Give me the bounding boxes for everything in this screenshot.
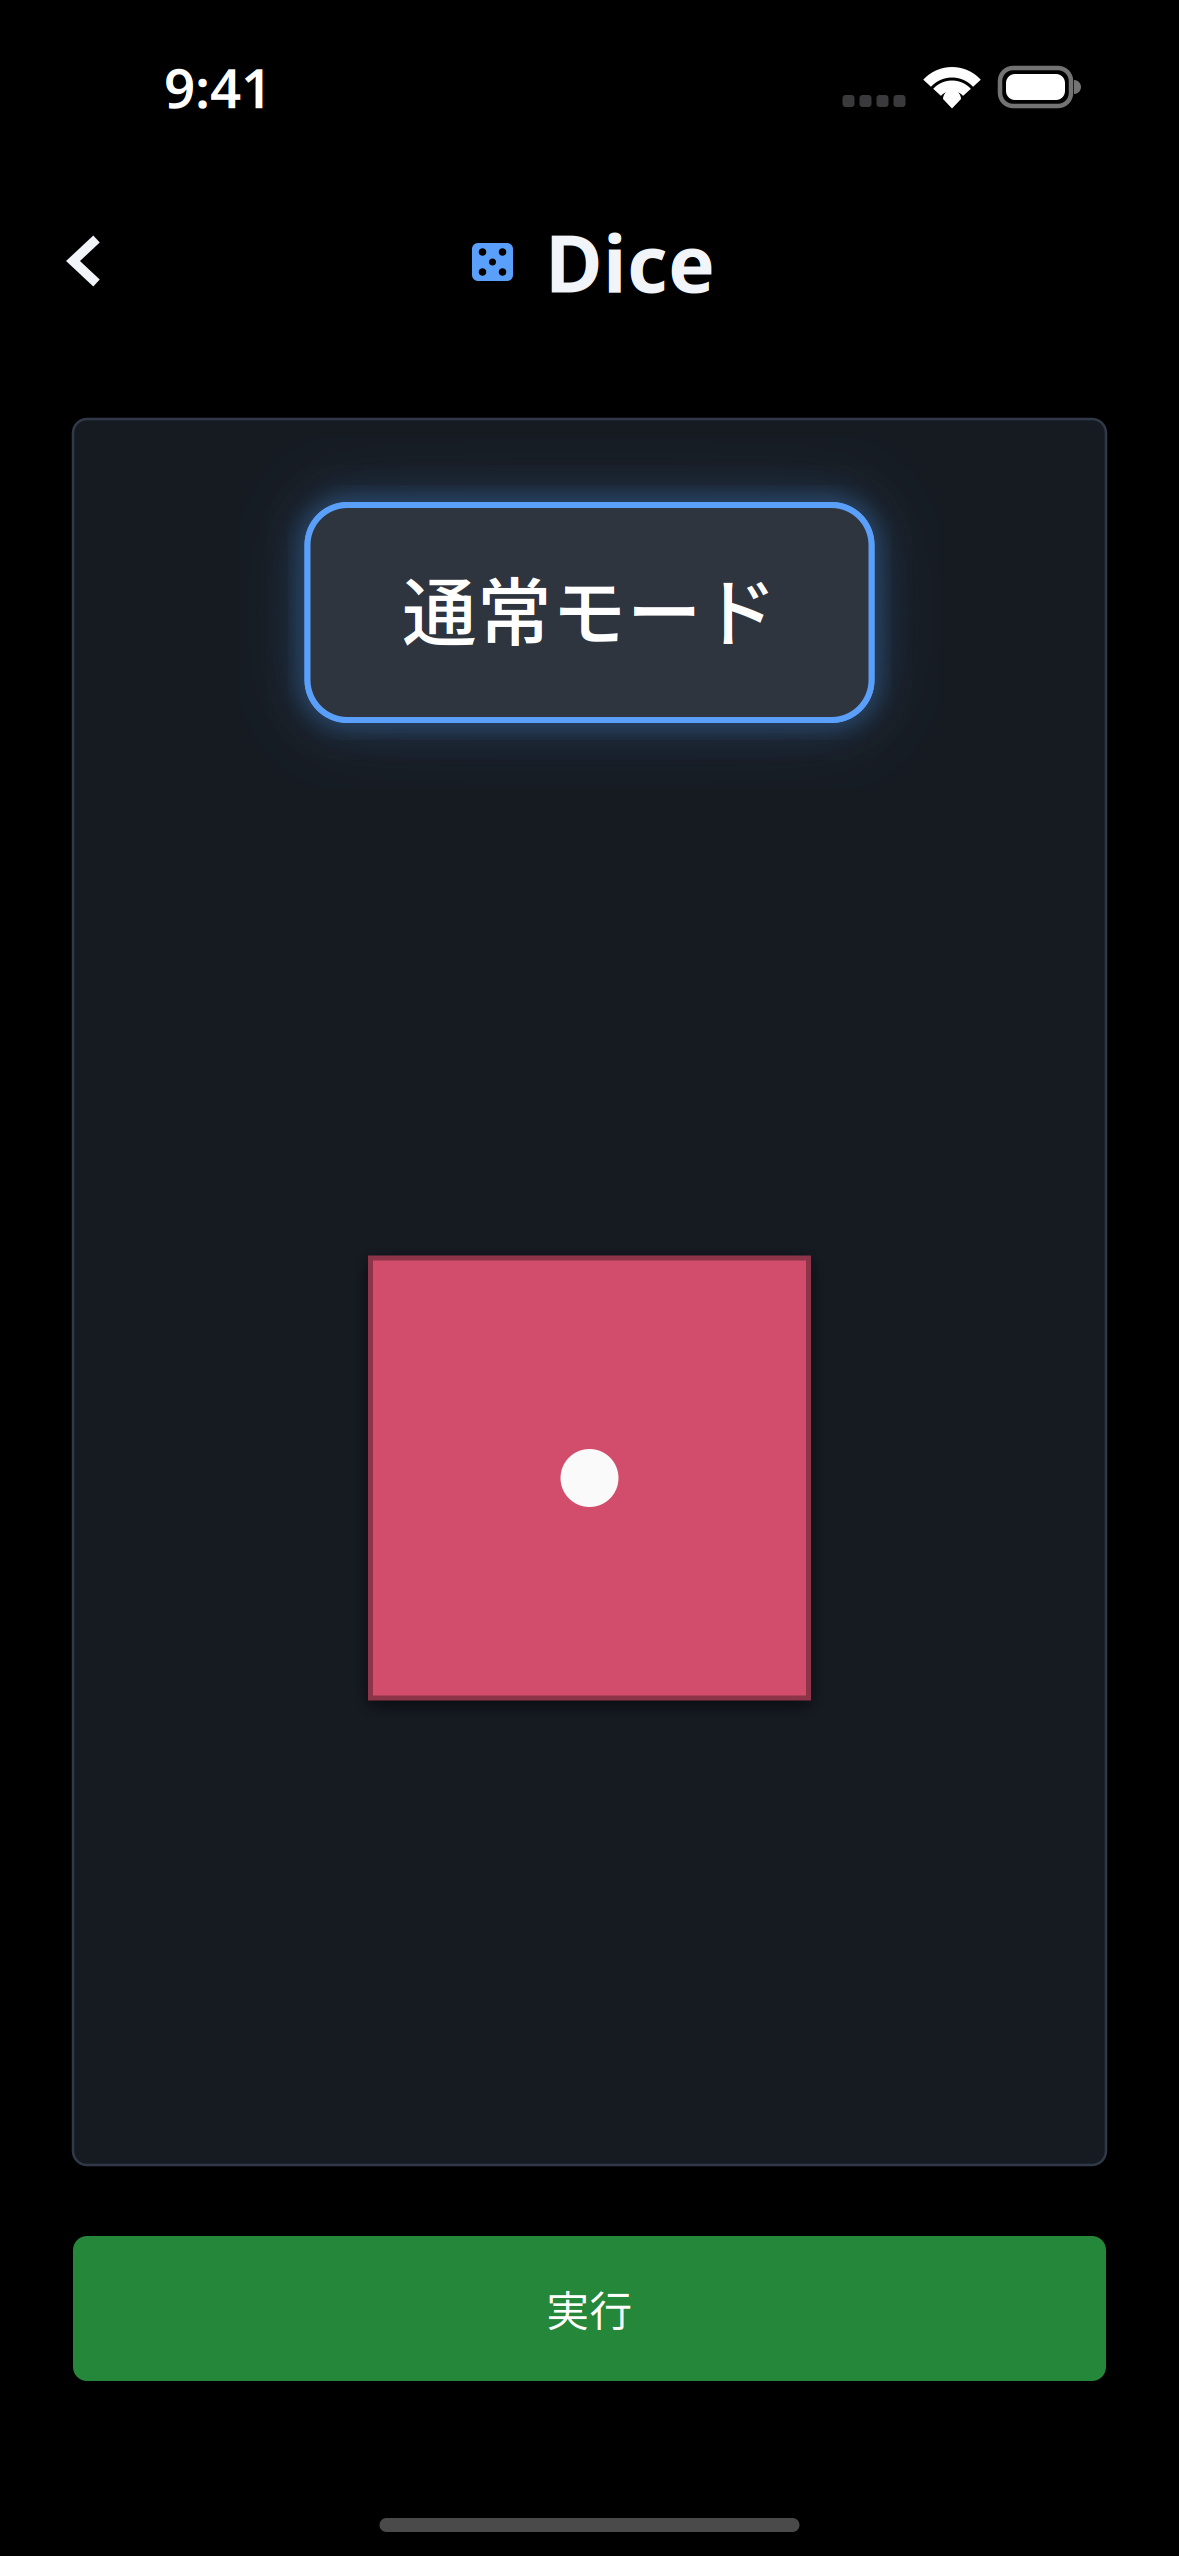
button[interactable]: 通常モード xyxy=(307,505,871,720)
button[interactable]: Back xyxy=(36,211,134,311)
button[interactable]: 実行 xyxy=(73,2236,1106,2381)
staticText: 通常モード xyxy=(402,553,777,661)
staticText: Dice xyxy=(545,210,715,314)
staticText: 実行 xyxy=(546,2278,632,2339)
staticText: 9:41 xyxy=(164,51,272,123)
